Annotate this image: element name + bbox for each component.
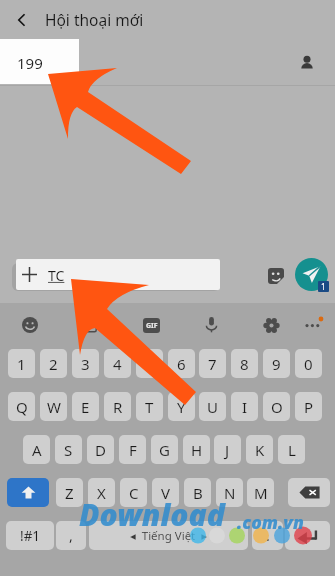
button[interactable]: Space, Tiếng Việt	[89, 521, 248, 550]
staticText: 5	[145, 354, 154, 374]
staticText: 8	[240, 354, 249, 374]
button[interactable]: H	[183, 435, 210, 464]
staticText: !#1	[20, 527, 41, 545]
staticText: L	[288, 440, 296, 460]
staticText: J	[225, 440, 230, 460]
button[interactable]: TC	[16, 259, 220, 290]
button[interactable]: Clipboard	[74, 309, 106, 341]
button[interactable]: N	[216, 478, 243, 507]
staticText: .com.vn	[237, 510, 304, 534]
button[interactable]: 199	[0, 39, 79, 84]
button[interactable]: Back	[6, 4, 38, 36]
button[interactable]: Contacts	[294, 50, 320, 76]
button[interactable]: 3	[72, 349, 99, 378]
button[interactable]: ,	[56, 521, 86, 550]
staticText: GIF	[146, 321, 158, 331]
button[interactable]: Shift	[7, 478, 49, 507]
staticText: S	[64, 440, 73, 460]
staticText: M	[254, 483, 268, 503]
button[interactable]: D	[87, 435, 114, 464]
staticText: R	[113, 397, 123, 417]
button[interactable]: 8	[231, 349, 258, 378]
button[interactable]: Backspace	[288, 478, 330, 507]
staticText: 3	[81, 354, 90, 374]
button[interactable]: V	[152, 478, 179, 507]
button[interactable]: F	[119, 435, 146, 464]
staticText: 0	[304, 354, 313, 374]
button[interactable]: K	[246, 435, 273, 464]
staticText: ,	[69, 526, 73, 545]
staticText: D	[95, 440, 106, 460]
button[interactable]: .	[252, 521, 283, 550]
button[interactable]: Enter	[285, 521, 330, 550]
button[interactable]: L	[278, 435, 305, 464]
button[interactable]: 7	[199, 349, 226, 378]
staticText: N	[224, 483, 236, 503]
staticText: 7	[208, 354, 217, 374]
staticText: T	[145, 397, 154, 417]
button[interactable]: T	[136, 392, 163, 421]
staticText: H	[191, 440, 203, 460]
staticText: K	[255, 440, 265, 460]
staticText: C	[129, 483, 139, 503]
staticText: ◂ Tiếng Việt ▸	[130, 528, 208, 544]
button[interactable]: A	[23, 435, 50, 464]
staticText: 199	[17, 53, 43, 73]
button[interactable]: I	[231, 392, 258, 421]
staticText: G	[159, 440, 170, 460]
staticText: A	[32, 440, 42, 460]
button[interactable]: J	[214, 435, 241, 464]
staticText: 9	[272, 354, 281, 374]
button[interactable]: 6	[168, 349, 195, 378]
staticText: P	[304, 397, 314, 417]
staticText: Hội thoại mới	[45, 9, 144, 30]
button[interactable]: S	[55, 435, 82, 464]
button[interactable]: C	[120, 478, 147, 507]
button[interactable]: E	[72, 392, 99, 421]
button[interactable]: Q	[8, 392, 35, 421]
button[interactable]: Voice input	[195, 308, 227, 340]
staticText: E	[81, 397, 90, 417]
staticText: X	[97, 483, 106, 503]
button[interactable]: X	[88, 478, 115, 507]
staticText: O	[271, 397, 283, 417]
button[interactable]: P	[295, 392, 322, 421]
staticText: 2	[49, 354, 58, 374]
staticText: Download	[79, 494, 225, 535]
staticText: V	[161, 483, 171, 503]
button[interactable]: 4	[104, 349, 131, 378]
button[interactable]: Z	[56, 478, 83, 507]
staticText: F	[129, 440, 137, 460]
button[interactable]: GIF	[135, 309, 167, 341]
staticText: U	[207, 397, 218, 417]
staticText: .	[266, 526, 270, 545]
button[interactable]: 1	[8, 349, 35, 378]
button[interactable]: G	[151, 435, 178, 464]
button[interactable]: Y	[168, 392, 195, 421]
staticText: 1	[321, 281, 326, 292]
staticText: TC	[48, 266, 65, 285]
button[interactable]: 5	[136, 349, 163, 378]
staticText: Q	[16, 397, 28, 417]
button[interactable]: 2	[40, 349, 67, 378]
staticText: W	[47, 397, 61, 417]
staticText: 6	[177, 354, 186, 374]
button[interactable]: !#1	[6, 521, 54, 550]
button[interactable]: Send	[295, 258, 328, 291]
button[interactable]: Emoji	[14, 309, 46, 341]
button[interactable]: U	[199, 392, 226, 421]
button[interactable]: More options	[297, 309, 329, 341]
staticText: Y	[177, 397, 186, 417]
button[interactable]: B	[184, 478, 211, 507]
button[interactable]: R	[104, 392, 131, 421]
staticText: 1	[17, 354, 26, 374]
button[interactable]: 0	[295, 349, 322, 378]
button[interactable]: 9	[263, 349, 290, 378]
staticText: Z	[65, 483, 74, 503]
button[interactable]: Sticker	[263, 263, 289, 289]
staticText: 4	[113, 354, 122, 374]
button[interactable]: W	[40, 392, 67, 421]
button[interactable]: M	[247, 478, 274, 507]
button[interactable]: O	[263, 392, 290, 421]
button[interactable]: Settings	[255, 309, 287, 341]
